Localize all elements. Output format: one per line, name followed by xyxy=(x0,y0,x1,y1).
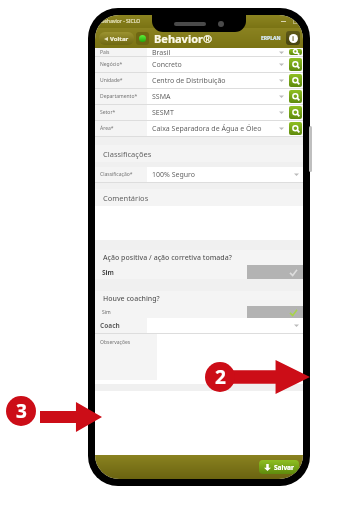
button[interactable]: Departamento* xyxy=(95,89,303,104)
button[interactable]: Setor* xyxy=(95,105,303,120)
staticText: Negócio* xyxy=(100,61,123,68)
staticText: Concreto xyxy=(152,60,182,70)
button[interactable]: Pesquisar Departamento* xyxy=(289,90,302,103)
staticText: Centro de Distribuição xyxy=(152,76,226,86)
staticText: ERPLAN xyxy=(261,35,281,42)
staticText: Voltar xyxy=(110,35,129,43)
staticText: Behavior - SICLO xyxy=(101,18,141,25)
button[interactable]: Pesquisar Unidade* xyxy=(289,74,302,87)
staticText: Salvar xyxy=(274,463,294,472)
button[interactable]: Negócio* xyxy=(95,57,303,72)
button[interactable]: Sim xyxy=(95,265,303,279)
staticText: SESMT xyxy=(152,108,174,118)
button[interactable]: Status xyxy=(136,32,149,45)
button[interactable]: Observações xyxy=(95,334,303,380)
staticText: i xyxy=(292,34,295,43)
staticText: Ação positiva / ação corretiva tomada? xyxy=(103,253,232,263)
button[interactable]: Classificação* xyxy=(95,167,303,182)
button[interactable]: Unidade* xyxy=(95,73,303,88)
staticText: Setor* xyxy=(100,109,116,116)
staticText: Classificação* xyxy=(100,171,133,178)
button[interactable]: Área* xyxy=(95,121,303,136)
staticText: Observações xyxy=(100,339,131,346)
button[interactable]: Sim xyxy=(95,306,303,318)
button[interactable]: Pesquisar País xyxy=(289,49,302,55)
staticText: SSMA xyxy=(152,92,171,102)
staticText: Coach xyxy=(100,321,120,330)
button[interactable]: Salvar xyxy=(259,460,299,474)
staticText: 100% Seguro xyxy=(152,170,196,180)
button[interactable]: Pesquisar Negócio* xyxy=(289,58,302,71)
button[interactable]: País xyxy=(95,48,303,56)
staticText: País xyxy=(100,49,110,56)
staticText: Houve coaching? xyxy=(103,294,160,304)
staticText: 3 xyxy=(16,398,27,424)
staticText: Sim xyxy=(102,268,114,277)
staticText: Unidade* xyxy=(100,77,123,84)
button[interactable]: ER Plan xyxy=(259,33,283,44)
staticText: Behavior® xyxy=(154,31,213,46)
button[interactable]: Informações xyxy=(286,31,300,45)
staticText: Classificações xyxy=(103,149,152,159)
button[interactable]: Voltar xyxy=(99,32,134,45)
staticText: Área* xyxy=(100,125,114,132)
staticText: Caixa Separadora de Água e Óleo xyxy=(152,124,262,134)
staticText: Departamento* xyxy=(100,93,138,100)
staticText: Brasil xyxy=(152,48,171,56)
staticText: Comentários xyxy=(103,193,149,203)
button[interactable]: Coach xyxy=(95,318,303,333)
staticText: Sim xyxy=(102,309,111,316)
button[interactable]: Pesquisar Área* xyxy=(289,122,302,135)
staticText: 2 xyxy=(215,364,226,390)
button[interactable]: Pesquisar Setor* xyxy=(289,106,302,119)
